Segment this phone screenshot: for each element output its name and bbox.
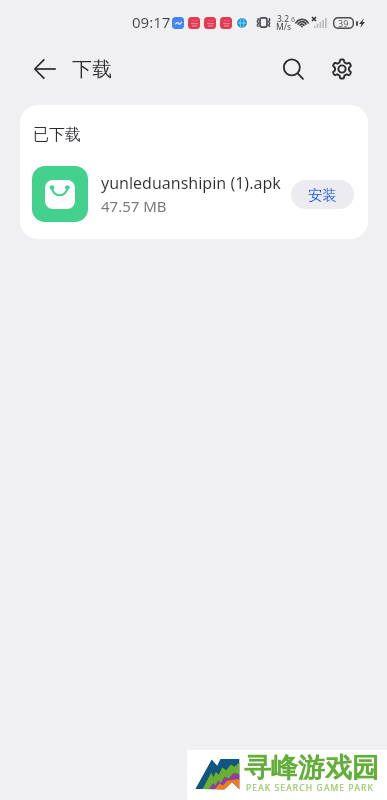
button[interactable]: Settings xyxy=(323,50,361,88)
staticText: PEAK SEARCH GAME PARK xyxy=(246,782,374,794)
staticText: 47.57 MB xyxy=(101,196,167,216)
staticText: 已下载 xyxy=(33,125,81,145)
button[interactable]: Back xyxy=(26,50,64,88)
button[interactable]: 安装 xyxy=(291,180,354,209)
staticText: 寻峰游戏园 xyxy=(244,751,379,785)
staticText: 39 xyxy=(338,17,349,29)
staticText: 3.2 xyxy=(277,13,290,25)
staticText: 下载 xyxy=(72,57,112,82)
staticText: yunleduanshipin (1).apk xyxy=(101,172,281,194)
staticText: M/s xyxy=(276,21,292,33)
staticText: 6 xyxy=(291,15,296,25)
staticText: 09:17 xyxy=(132,12,171,32)
button[interactable]: Search xyxy=(274,50,312,88)
button[interactable]: yunleduanshipin (1).apk xyxy=(20,161,368,227)
staticText: 安装 xyxy=(308,186,337,204)
